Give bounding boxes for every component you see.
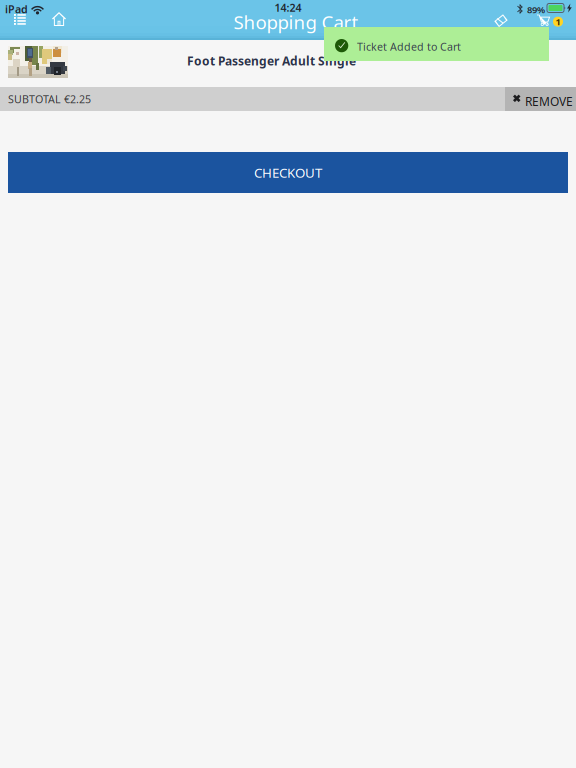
staticText: Foot Passenger Adult Single — [187, 53, 356, 69]
staticText: 1 — [555, 15, 560, 28]
staticText: iPad — [5, 2, 28, 16]
button[interactable]: My Tickets — [498, 14, 522, 38]
staticText: Shopping Cart — [233, 10, 358, 34]
staticText: 14:24 — [274, 0, 301, 15]
button[interactable]: Menu — [14, 14, 38, 38]
button[interactable]: Home — [52, 14, 76, 38]
staticText: 89% — [527, 3, 545, 16]
button[interactable]: CHECKOUT — [8, 152, 568, 193]
staticText: Ticket Added to Cart — [357, 39, 461, 54]
staticText: SUBTOTAL €2.25 — [8, 92, 91, 106]
staticText: CHECKOUT — [254, 164, 322, 181]
button[interactable]: REMOVE — [505, 87, 576, 111]
button[interactable]: Shopping Cart, 1 item — [536, 14, 562, 38]
staticText: REMOVE — [525, 93, 573, 109]
